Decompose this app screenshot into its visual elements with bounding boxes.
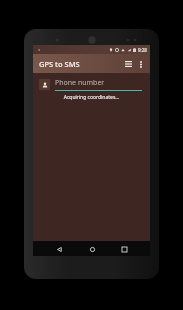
staticText: Acquiring coordinates... xyxy=(33,94,150,101)
staticText: GPS to SMS xyxy=(39,59,80,69)
button[interactable]: Home xyxy=(85,242,99,256)
button[interactable]: Recents xyxy=(117,242,131,256)
other: Pick contact xyxy=(39,79,50,90)
staticText: 9:28 xyxy=(138,47,147,53)
button[interactable]: List xyxy=(121,57,135,71)
staticText: Phone number xyxy=(55,78,105,88)
button[interactable]: Pick contact xyxy=(39,78,142,91)
button[interactable]: More options xyxy=(135,58,147,70)
button[interactable]: Back xyxy=(52,242,66,256)
